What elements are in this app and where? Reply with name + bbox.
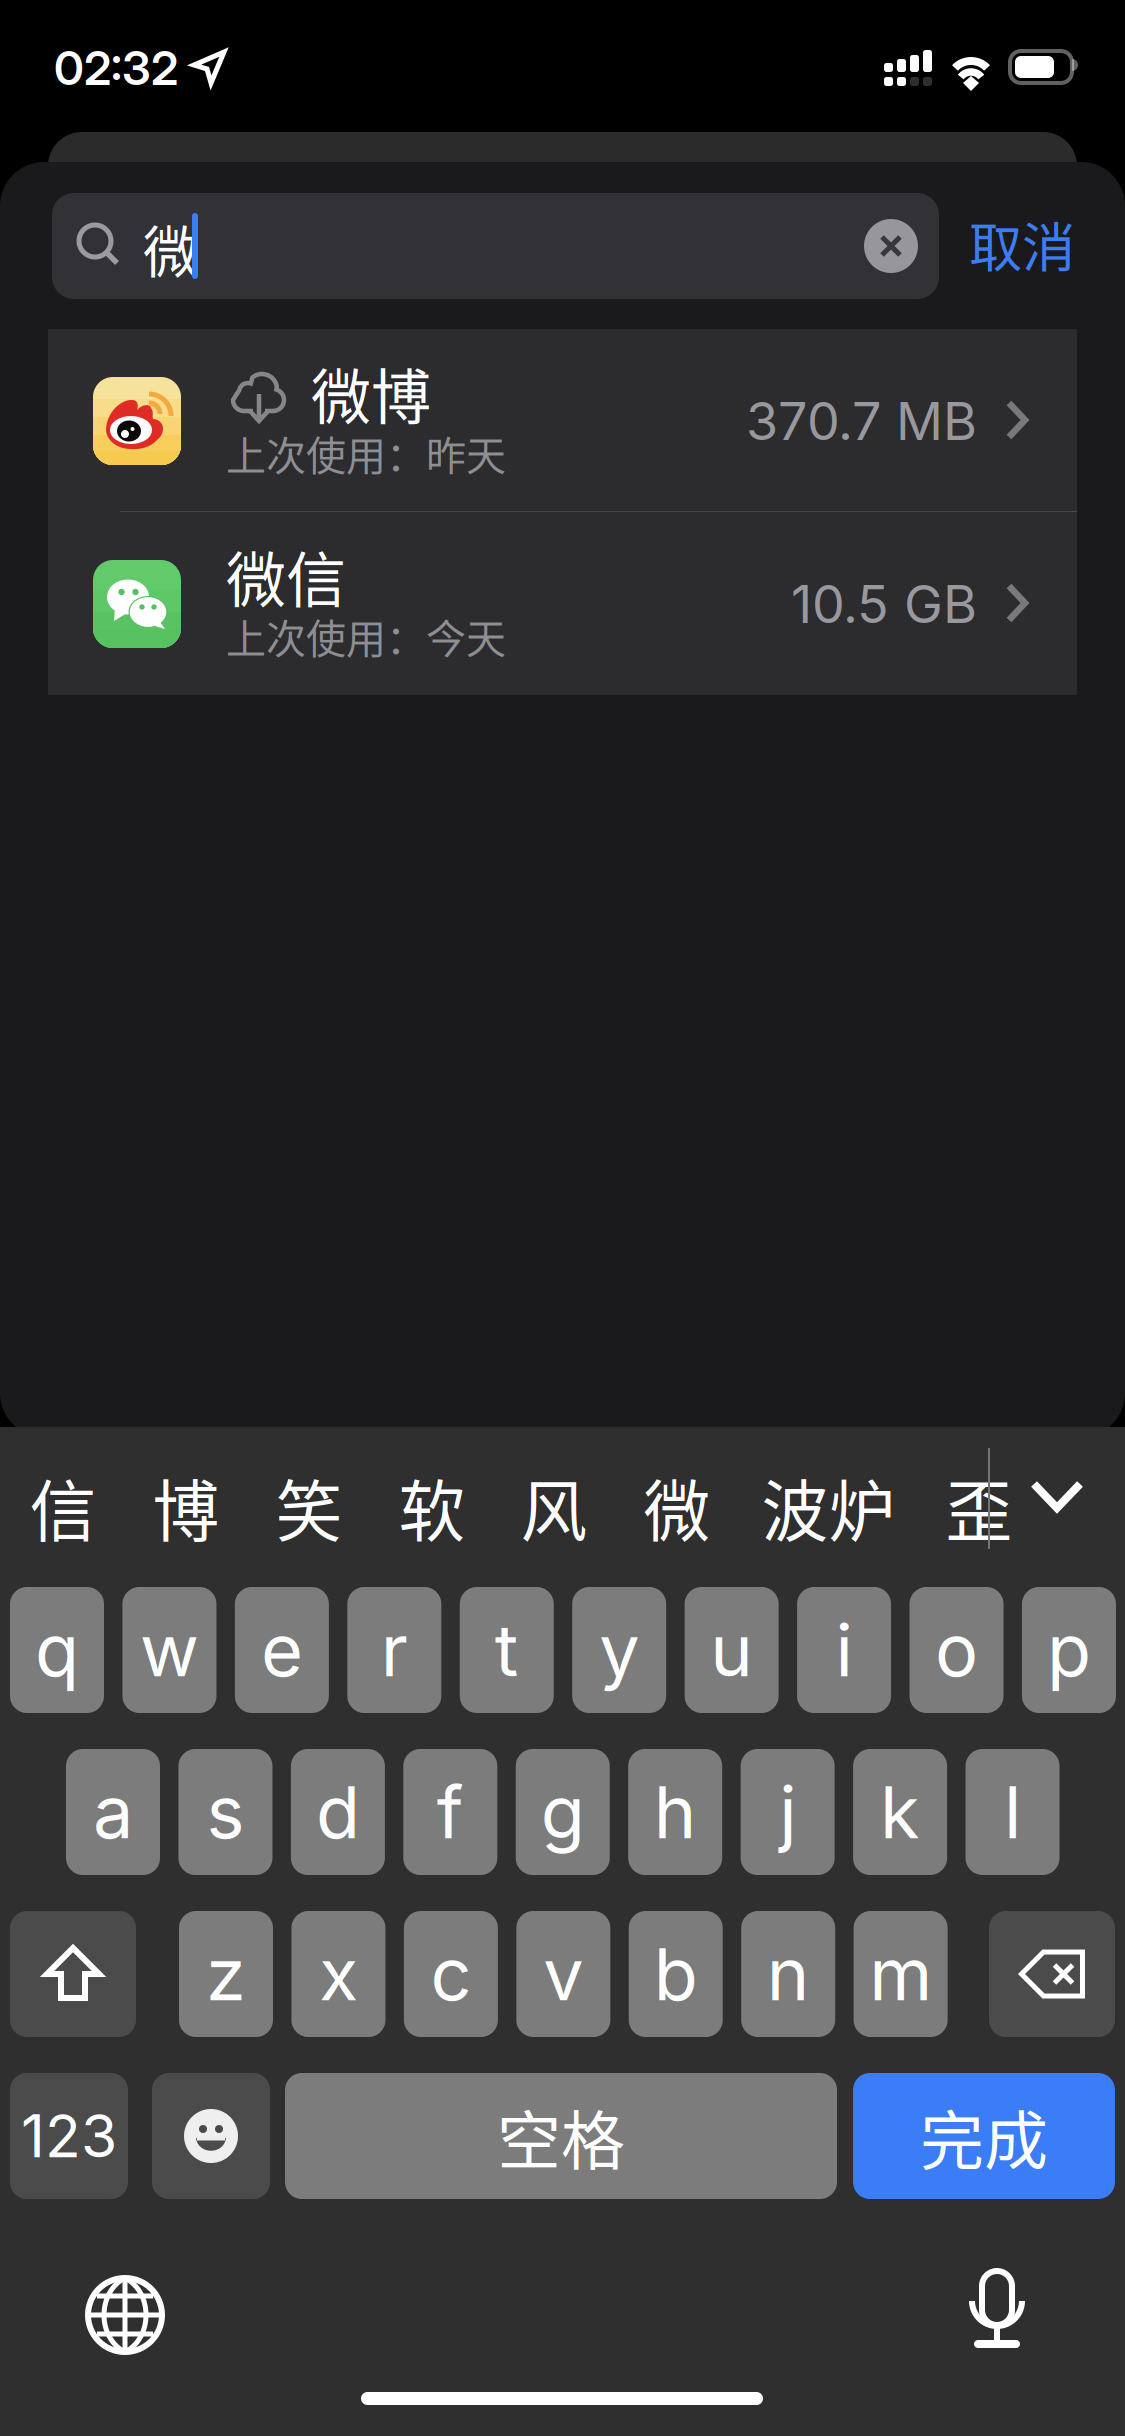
staticText: o (935, 1606, 978, 1693)
button[interactable]: 123 (10, 2073, 128, 2199)
staticText: 博 (152, 1459, 219, 1555)
staticText: 微 (143, 207, 199, 289)
staticText: 取消 (969, 205, 1075, 283)
button[interactable]: q (10, 1587, 104, 1713)
staticText: m (869, 1930, 932, 2017)
button[interactable]: j (741, 1749, 835, 1875)
button[interactable]: c (404, 1911, 498, 2037)
staticText: d (316, 1768, 360, 1855)
button[interactable]: h (628, 1749, 722, 1875)
button[interactable]: 完成 (853, 2073, 1115, 2199)
button[interactable]: g (516, 1749, 610, 1875)
button[interactable]: o (909, 1587, 1003, 1713)
button[interactable]: u (685, 1587, 779, 1713)
staticText: x (319, 1930, 358, 2017)
button[interactable]: i (797, 1587, 891, 1713)
staticText: 微 (643, 1459, 710, 1555)
staticText: 空格 (497, 2090, 625, 2182)
button[interactable]: Emoji (152, 2073, 270, 2199)
button[interactable]: s (178, 1749, 272, 1875)
staticText: r (381, 1606, 408, 1693)
staticText: j (779, 1768, 796, 1855)
button[interactable]: 笑 (0, 0, 1125, 2436)
button[interactable]: t (460, 1587, 554, 1713)
staticText: 微博 (311, 350, 431, 436)
button[interactable]: l (965, 1749, 1059, 1875)
button[interactable]: 微博 (0, 0, 1125, 2436)
button[interactable]: 风 (0, 0, 1125, 2436)
button[interactable]: n (741, 1911, 835, 2037)
button[interactable]: 歪 (0, 0, 1125, 2436)
button[interactable]: k (853, 1749, 947, 1875)
staticText: n (767, 1930, 810, 2017)
staticText: k (880, 1768, 920, 1855)
staticText: 微信 (226, 533, 346, 619)
staticText: z (206, 1930, 246, 2017)
button[interactable]: 波炉 (0, 0, 1125, 2436)
staticText: a (93, 1768, 133, 1855)
button[interactable]: d (291, 1749, 385, 1875)
staticText: 笑 (275, 1459, 342, 1555)
button[interactable]: v (516, 1911, 610, 2037)
button[interactable]: 信 (0, 0, 1125, 2436)
button[interactable]: e (235, 1587, 329, 1713)
staticText: 370.7 MB (746, 389, 977, 452)
button[interactable]: Shift (10, 1911, 136, 2037)
button[interactable]: 取消 (0, 0, 1125, 2436)
staticText: 歪 (945, 1459, 1012, 1555)
button[interactable]: z (179, 1911, 273, 2037)
staticText: c (430, 1930, 471, 2017)
button[interactable]: Hide keyboard (0, 0, 1125, 2436)
staticText: 02:32 (54, 40, 178, 96)
staticText: q (35, 1606, 79, 1693)
staticText: 完成 (920, 2090, 1048, 2182)
staticText: u (710, 1606, 753, 1693)
button[interactable]: 微 (0, 0, 1125, 2436)
button[interactable]: b (629, 1911, 723, 2037)
staticText: p (1047, 1606, 1091, 1693)
staticText: h (654, 1768, 697, 1855)
staticText: t (495, 1606, 519, 1693)
button[interactable]: Switch keyboard (0, 0, 1125, 2436)
staticText: l (1004, 1768, 1021, 1855)
button[interactable]: r (347, 1587, 441, 1713)
button[interactable]: Dictate (0, 0, 1125, 2436)
button[interactable]: a (66, 1749, 160, 1875)
staticText: b (654, 1930, 698, 2017)
button[interactable]: 软 (0, 0, 1125, 2436)
staticText: 波炉 (761, 1459, 895, 1555)
staticText: w (140, 1606, 199, 1693)
staticText: 软 (398, 1459, 465, 1555)
button[interactable]: w (122, 1587, 216, 1713)
button[interactable]: 微 (0, 0, 1125, 2436)
button[interactable]: x (291, 1911, 385, 2037)
staticText: s (206, 1768, 244, 1855)
staticText: 10.5 GB (791, 572, 977, 635)
button[interactable]: Delete (989, 1911, 1115, 2037)
staticText: 123 (21, 2100, 117, 2171)
button[interactable]: 微信 (0, 0, 1125, 2436)
staticText: i (836, 1606, 853, 1693)
staticText: 风 (520, 1459, 587, 1555)
button[interactable]: f (403, 1749, 497, 1875)
staticText: y (599, 1606, 639, 1693)
staticText: 信 (29, 1459, 96, 1555)
button[interactable]: 博 (0, 0, 1125, 2436)
staticText: e (261, 1606, 303, 1693)
staticText: v (543, 1930, 583, 2017)
staticText: f (437, 1768, 464, 1855)
staticText: g (541, 1768, 585, 1855)
button[interactable]: p (1022, 1587, 1116, 1713)
button[interactable]: 空格 (285, 2073, 837, 2199)
staticText: 上次使用：今天 (226, 607, 506, 665)
button[interactable]: y (572, 1587, 666, 1713)
staticText: 上次使用：昨天 (226, 424, 506, 482)
button[interactable]: m (854, 1911, 948, 2037)
